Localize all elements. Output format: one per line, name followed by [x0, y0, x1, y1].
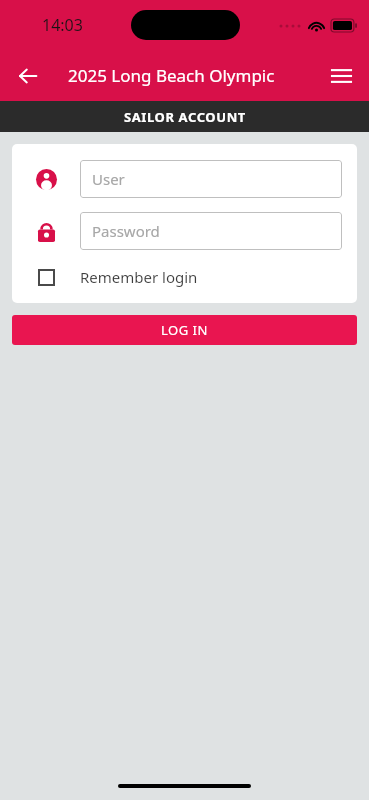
staticText: Password — [92, 221, 160, 241]
button[interactable]: Menu — [319, 54, 363, 98]
button[interactable]: LOG IN — [12, 315, 357, 345]
staticText: 14:03 — [42, 14, 83, 36]
button[interactable]: Back — [6, 54, 50, 98]
staticText: SAILOR ACCOUNT — [124, 108, 246, 126]
staticText: LOG IN — [161, 321, 208, 339]
staticText: 2025 Long Beach Olympic Classic — [68, 64, 307, 87]
button[interactable]: Remember login — [12, 267, 357, 287]
staticText: Remember login — [80, 267, 198, 287]
button[interactable]: Password — [80, 212, 342, 250]
button[interactable]: User — [80, 160, 342, 198]
staticText: User — [92, 169, 125, 189]
